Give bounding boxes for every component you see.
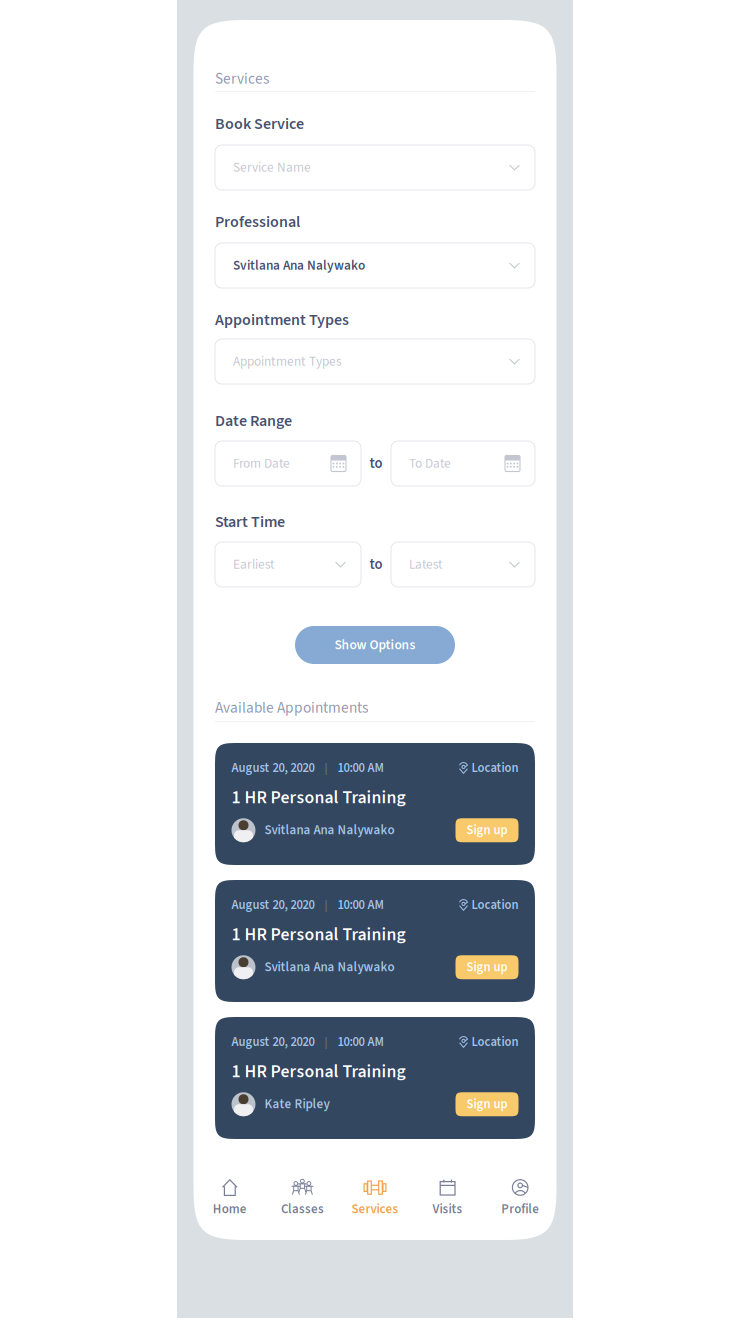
button[interactable]: Classes <box>266 1178 339 1240</box>
staticText: 10:00 AM <box>337 1033 383 1051</box>
staticText: Svitlana Ana Nalywako <box>233 256 365 275</box>
button[interactable]: Svitlana Ana Nalywako <box>215 243 535 288</box>
button[interactable]: To Date <box>391 441 535 486</box>
staticText: Classes <box>281 1200 324 1218</box>
staticText: Earliest <box>233 555 275 574</box>
staticText: 1 HR Personal Training <box>231 922 405 947</box>
staticText: Home <box>213 1200 247 1218</box>
button[interactable]: Profile <box>484 1178 556 1240</box>
staticText: | <box>324 759 327 777</box>
staticText: Appointment Types <box>215 309 349 331</box>
button[interactable]: Visits <box>411 1178 484 1240</box>
staticText: Location <box>468 896 518 914</box>
staticText: to <box>369 554 382 575</box>
staticText: 1 HR Personal Training <box>231 785 405 810</box>
button[interactable]: From Date <box>215 441 361 486</box>
staticText: Start Time <box>215 511 285 533</box>
staticText: To Date <box>409 454 451 473</box>
staticText: Svitlana Ana Nalywako <box>255 821 394 839</box>
staticText: August 20, 2020 <box>231 896 314 914</box>
staticText: Services <box>215 68 269 90</box>
staticText: Location <box>468 759 518 777</box>
staticText: August 20, 2020 <box>231 759 314 777</box>
staticText: Sign up <box>466 1095 507 1113</box>
staticText: Available Appointments <box>215 697 368 719</box>
staticText: Profile <box>501 1200 539 1218</box>
staticText: August 20, 2020 <box>231 1033 314 1051</box>
button[interactable]: Appointment Types <box>215 339 535 384</box>
staticText: From Date <box>233 454 290 473</box>
button[interactable]: Sign up <box>455 818 518 842</box>
staticText: Services <box>351 1200 398 1218</box>
button[interactable]: Latest <box>391 542 535 587</box>
staticText: Sign up <box>466 958 507 976</box>
staticText: Show Options <box>334 635 415 655</box>
staticText: 10:00 AM <box>337 759 383 777</box>
staticText: Professional <box>215 211 300 233</box>
button[interactable]: Earliest <box>215 542 361 587</box>
staticText: Location <box>468 1033 518 1051</box>
staticText: | <box>324 1033 327 1051</box>
staticText: Book Service <box>215 113 304 135</box>
button[interactable]: Services <box>339 1178 411 1240</box>
staticText: Sign up <box>466 821 507 839</box>
button[interactable]: Sign up <box>455 955 518 979</box>
staticText: | <box>324 896 327 914</box>
staticText: Service Name <box>233 158 311 177</box>
staticText: Visits <box>433 1200 463 1218</box>
button[interactable]: Sign up <box>455 1092 518 1116</box>
staticText: Svitlana Ana Nalywako <box>255 958 394 976</box>
staticText: to <box>369 453 382 474</box>
staticText: Kate Ripley <box>255 1095 329 1113</box>
staticText: 10:00 AM <box>337 896 383 914</box>
button[interactable]: Home <box>193 1178 266 1240</box>
button[interactable]: Show Options <box>295 626 455 664</box>
staticText: Date Range <box>215 410 292 432</box>
button[interactable]: Service Name <box>215 145 535 190</box>
staticText: Latest <box>409 555 443 574</box>
staticText: Appointment Types <box>233 352 342 371</box>
staticText: 1 HR Personal Training <box>231 1059 405 1084</box>
